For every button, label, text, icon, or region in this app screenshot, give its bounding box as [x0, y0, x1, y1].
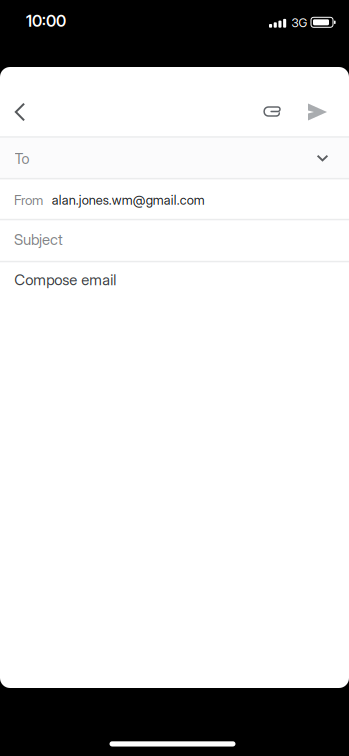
- button[interactable]: Subject: [0, 219, 349, 260]
- staticText: Subject: [14, 230, 63, 248]
- button[interactable]: Compose email: [0, 261, 349, 300]
- staticText: To: [14, 150, 29, 167]
- button[interactable]: Back: [0, 92, 40, 132]
- staticText: From: [14, 192, 43, 208]
- button[interactable]: Send: [299, 94, 335, 130]
- staticText: 10:00: [26, 11, 66, 31]
- staticText: alan.jones.wm@gmail.com: [52, 192, 205, 208]
- staticText: 3G: [291, 16, 307, 30]
- button[interactable]: From: [0, 179, 349, 219]
- button[interactable]: Attach file: [255, 93, 291, 129]
- button[interactable]: To: [0, 138, 349, 178]
- staticText: Compose email: [14, 271, 116, 289]
